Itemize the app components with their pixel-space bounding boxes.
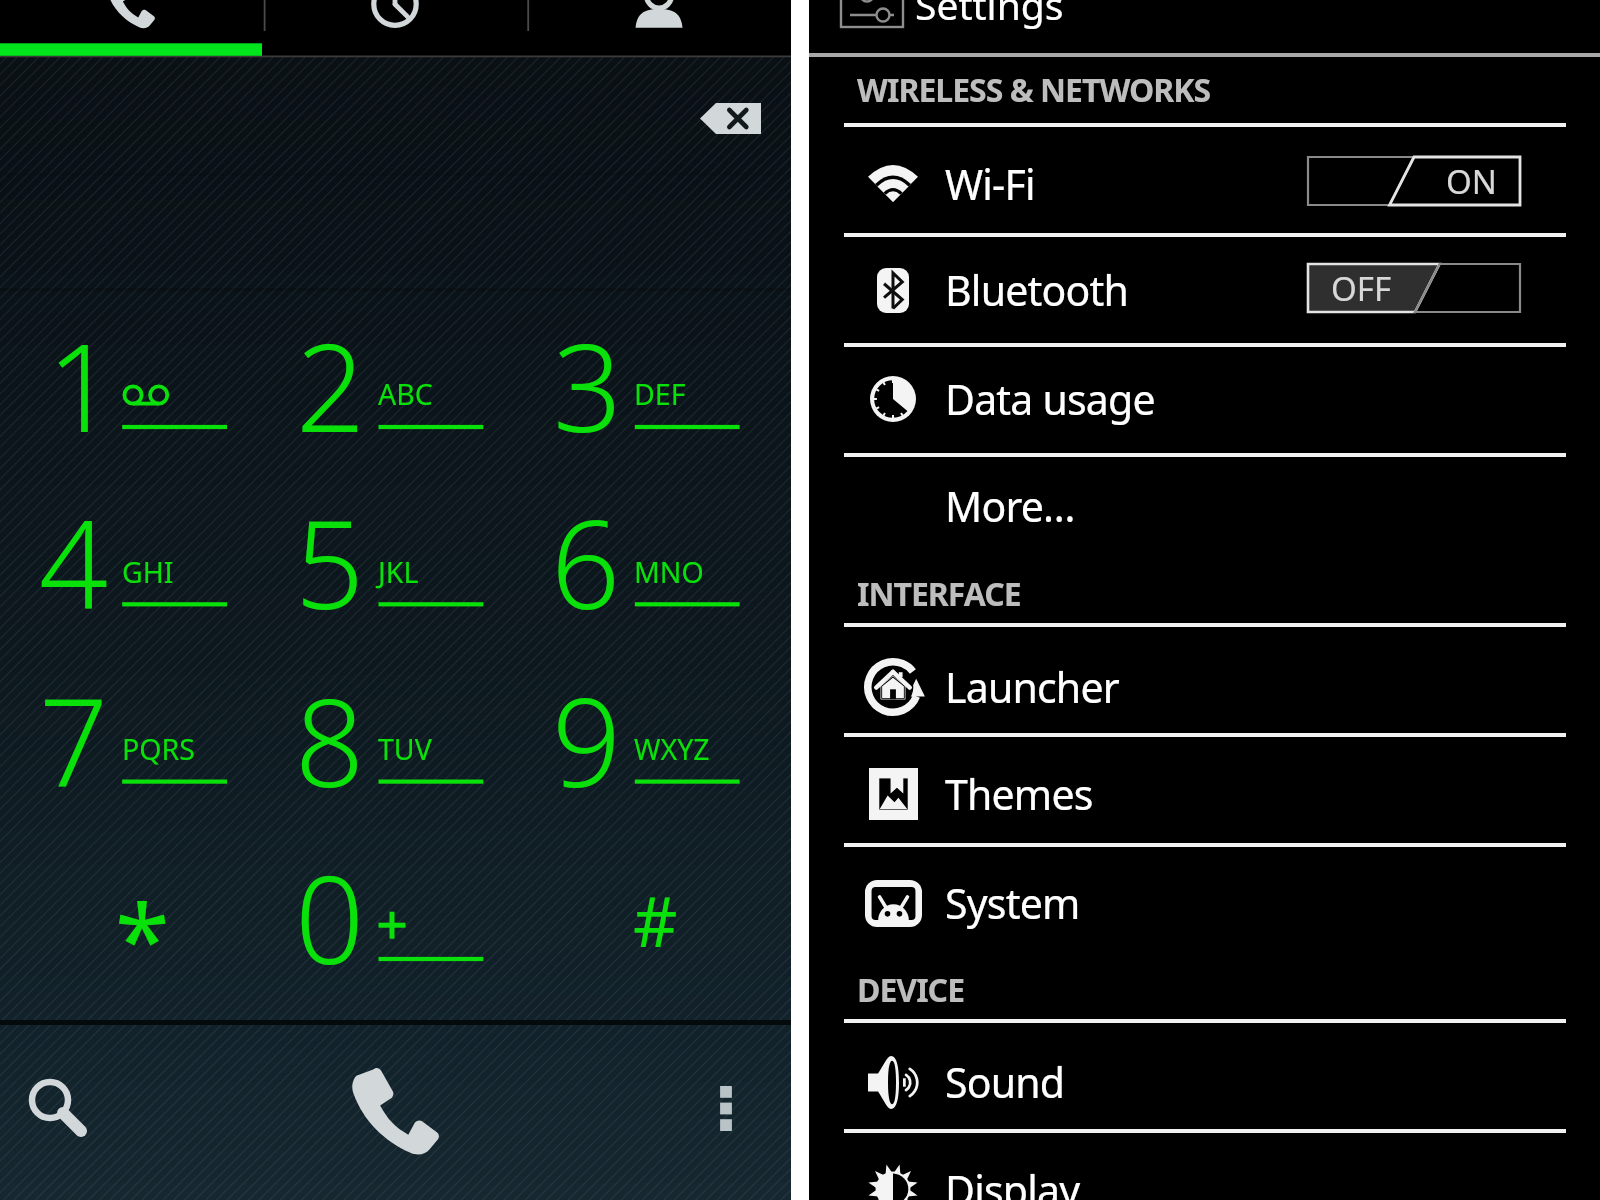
staticText: 6 — [551, 480, 621, 645]
button[interactable]: 7 — [13, 650, 269, 827]
button[interactable] — [809, 125, 1600, 235]
button[interactable] — [809, 1131, 1600, 1200]
button[interactable]: Search — [10, 1055, 110, 1165]
button[interactable]: More options — [686, 1055, 766, 1165]
button[interactable]: 5 — [269, 472, 525, 649]
button[interactable]: 8 — [269, 650, 525, 827]
staticText: 3 — [553, 303, 623, 468]
button[interactable]: 6 — [526, 472, 782, 649]
staticText: GHI — [122, 553, 174, 592]
button[interactable]: Dialer — [0, 0, 263, 57]
staticText: * — [115, 870, 170, 1005]
button[interactable]: * — [13, 827, 269, 1004]
button[interactable]: Delete — [700, 103, 761, 134]
staticText: 0 — [295, 835, 365, 1000]
staticText: Launcher — [945, 659, 1119, 715]
staticText: 4 — [39, 480, 109, 645]
staticText: 8 — [295, 658, 365, 823]
button[interactable]: 3 — [526, 295, 782, 472]
staticText: WIRELESS & NETWORKS — [857, 68, 1211, 112]
staticText: Themes — [945, 766, 1093, 822]
staticText: System — [945, 875, 1080, 931]
staticText: JKL — [378, 553, 419, 592]
staticText: WXYZ — [634, 730, 710, 769]
button[interactable] — [809, 845, 1600, 960]
button[interactable]: 2 — [269, 295, 525, 472]
staticText: 7 — [39, 658, 109, 823]
staticText: 1 — [47, 303, 117, 468]
staticText: DEF — [634, 375, 686, 414]
button[interactable]: Contacts — [527, 0, 791, 57]
staticText: Sound — [945, 1054, 1065, 1110]
button[interactable]: 4 — [13, 472, 269, 649]
staticText: More… — [945, 478, 1075, 534]
staticText: Wi-Fi — [945, 156, 1035, 212]
staticText: OFF — [1331, 266, 1392, 311]
button[interactable]: # — [526, 827, 782, 1004]
button[interactable] — [809, 625, 1600, 735]
staticText: Display — [945, 1162, 1080, 1200]
button[interactable] — [809, 455, 1600, 560]
button[interactable]: 0 — [269, 827, 525, 1004]
button[interactable]: Call log — [263, 0, 527, 57]
staticText: Bluetooth — [945, 262, 1129, 318]
button[interactable] — [809, 235, 1600, 345]
button[interactable]: 9 — [526, 650, 782, 827]
staticText: 2 — [296, 303, 366, 468]
button[interactable]: Wi-Fi on — [1308, 157, 1520, 205]
staticText: INTERFACE — [857, 572, 1021, 616]
staticText: MNO — [634, 553, 704, 592]
staticText: DEVICE — [857, 968, 965, 1012]
staticText: Settings — [915, 0, 1064, 31]
staticText: ON — [1446, 159, 1497, 204]
button[interactable]: Call — [346, 1055, 446, 1165]
button[interactable]: 1 — [13, 295, 269, 472]
button[interactable] — [809, 1021, 1600, 1131]
staticText: # — [633, 873, 678, 967]
staticText: 9 — [552, 658, 622, 823]
button[interactable]: Settings — [809, 0, 1600, 53]
staticText: TUV — [378, 730, 432, 769]
staticText: Data usage — [945, 371, 1155, 427]
button[interactable]: Bluetooth off — [1308, 264, 1520, 312]
staticText: 5 — [295, 480, 365, 645]
staticText: ABC — [378, 375, 433, 414]
button[interactable] — [809, 735, 1600, 845]
button[interactable] — [809, 345, 1600, 455]
staticText: PQRS — [122, 730, 195, 769]
